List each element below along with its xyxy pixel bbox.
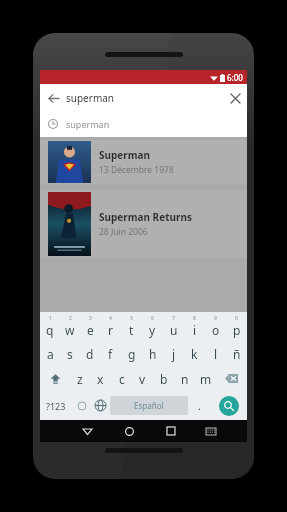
- button[interactable]: h: [142, 341, 163, 366]
- staticText: h: [149, 346, 157, 362]
- staticText: d: [86, 346, 94, 362]
- button[interactable]: 4: [100, 315, 121, 341]
- staticText: a: [47, 346, 54, 362]
- button[interactable]: b: [153, 366, 174, 391]
- button[interactable]: 7: [163, 315, 184, 341]
- button[interactable]: 6: [142, 315, 163, 341]
- staticText: f: [108, 346, 113, 362]
- button[interactable]: Recents: [150, 420, 192, 442]
- button[interactable]: superman: [40, 112, 247, 136]
- staticText: s: [67, 346, 73, 362]
- staticText: Español: [134, 400, 164, 411]
- staticText: Superman: [99, 148, 151, 162]
- staticText: y: [149, 322, 156, 338]
- button[interactable]: n: [174, 366, 195, 391]
- staticText: w: [65, 322, 75, 338]
- button[interactable]: ?123: [40, 391, 72, 420]
- staticText: b: [160, 371, 168, 387]
- button[interactable]: Keyboard: [192, 420, 230, 442]
- staticText: p: [233, 322, 241, 338]
- staticText: e: [87, 322, 94, 338]
- button[interactable]: 5: [121, 315, 142, 341]
- staticText: 4: [109, 315, 112, 322]
- button[interactable]: Home: [108, 420, 150, 442]
- button[interactable]: Shift: [40, 366, 70, 391]
- staticText: k: [191, 346, 198, 362]
- button[interactable]: 8: [184, 315, 205, 341]
- staticText: t: [129, 322, 134, 338]
- button[interactable]: d: [80, 341, 100, 366]
- staticText: 1: [49, 315, 52, 322]
- staticText: x: [97, 371, 104, 387]
- button[interactable]: g: [121, 341, 142, 366]
- staticText: ñ: [233, 346, 241, 362]
- button[interactable]: Back: [40, 84, 247, 112]
- button[interactable]: l: [205, 341, 226, 366]
- staticText: q: [46, 322, 54, 338]
- staticText: 7: [172, 315, 175, 322]
- button[interactable]: Superman: [40, 140, 247, 184]
- staticText: 28 Juin 2006: [99, 226, 148, 238]
- button[interactable]: s: [60, 341, 80, 366]
- staticText: m: [200, 371, 212, 387]
- staticText: i: [193, 322, 197, 338]
- button[interactable]: Español: [110, 396, 188, 415]
- staticText: Superman Returns: [99, 210, 192, 224]
- button[interactable]: x: [90, 366, 111, 391]
- button[interactable]: 9: [205, 315, 226, 341]
- staticText: c: [119, 371, 125, 387]
- button[interactable]: Back: [66, 420, 108, 442]
- staticText: o: [212, 322, 220, 338]
- staticText: g: [128, 346, 136, 362]
- staticText: 0: [235, 315, 238, 322]
- button[interactable]: Change language: [91, 391, 110, 420]
- staticText: v: [139, 371, 146, 387]
- staticText: l: [214, 346, 218, 362]
- button[interactable]: Clear: [223, 84, 247, 112]
- button[interactable]: Emoji: [72, 391, 91, 420]
- staticText: j: [172, 346, 176, 362]
- button[interactable]: 0: [226, 315, 247, 341]
- staticText: r: [108, 322, 113, 338]
- staticText: 9: [214, 315, 217, 322]
- staticText: 6: [151, 315, 154, 322]
- button[interactable]: Search: [210, 391, 247, 420]
- button[interactable]: j: [163, 341, 184, 366]
- staticText: 3: [89, 315, 92, 322]
- staticText: 8: [193, 315, 196, 322]
- button[interactable]: 3: [80, 315, 100, 341]
- staticText: ?123: [46, 400, 66, 412]
- button[interactable]: f: [100, 341, 121, 366]
- staticText: 5: [130, 315, 133, 322]
- staticText: .: [198, 398, 201, 413]
- button[interactable]: Superman Returns: [40, 190, 247, 258]
- staticText: n: [181, 371, 189, 387]
- button[interactable]: Back: [40, 84, 66, 112]
- staticText: z: [77, 371, 83, 387]
- staticText: 2: [69, 315, 72, 322]
- staticText: u: [170, 322, 178, 338]
- button[interactable]: c: [111, 366, 132, 391]
- staticText: superman: [66, 118, 110, 130]
- staticText: 13 Décembre 1978: [99, 164, 174, 176]
- button[interactable]: .: [188, 391, 210, 420]
- button[interactable]: 1: [40, 315, 60, 341]
- button[interactable]: a: [40, 341, 60, 366]
- staticText: 6:00: [227, 72, 243, 83]
- button[interactable]: m: [195, 366, 216, 391]
- button[interactable]: k: [184, 341, 205, 366]
- button[interactable]: v: [132, 366, 153, 391]
- button[interactable]: 2: [60, 315, 80, 341]
- staticText: superman: [66, 91, 115, 105]
- button[interactable]: z: [70, 366, 90, 391]
- button[interactable]: ñ: [226, 341, 247, 366]
- button[interactable]: Backspace: [216, 366, 247, 391]
